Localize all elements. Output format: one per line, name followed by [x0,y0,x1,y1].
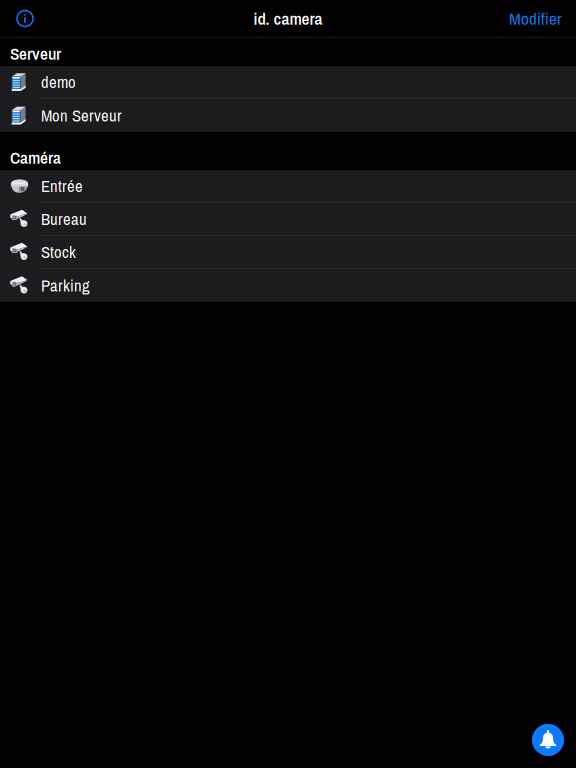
staticText: Caméra [10,146,61,169]
staticText: id. camera [253,7,322,30]
staticText: Entrée [41,175,83,197]
button[interactable]: Entrée [0,170,576,203]
staticText: Modifier [509,7,562,30]
staticText: Mon Serveur [41,104,122,127]
button[interactable]: Mon Serveur [0,99,576,132]
button[interactable]: Modifier [509,0,576,37]
staticText: Bureau [41,208,87,230]
button[interactable]: Stock [0,236,576,269]
staticText: demo [41,71,76,93]
button[interactable]: Parking [0,269,576,302]
button[interactable]: Informations [0,0,44,37]
staticText: Serveur [10,42,61,65]
button[interactable]: Bureau [0,203,576,236]
staticText: Parking [41,274,90,297]
button[interactable]: demo [0,66,576,99]
staticText: Stock [41,241,76,263]
button[interactable]: Notifications [532,724,564,756]
